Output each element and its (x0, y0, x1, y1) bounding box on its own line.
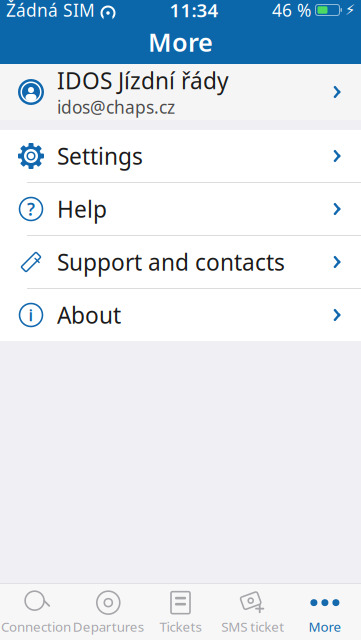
button[interactable]: Tickets (144, 588, 217, 636)
staticText: Departures (73, 618, 144, 635)
button[interactable]: Support and contacts (0, 236, 361, 288)
staticText: Tickets (159, 618, 201, 635)
staticText: Settings (57, 141, 143, 171)
staticText: Žádná SIM (6, 0, 95, 21)
staticText: Connection (1, 618, 71, 635)
button[interactable]: More (289, 588, 361, 636)
staticText: IDOS Jízdní řády (57, 65, 229, 95)
button[interactable]: SMS ticket (217, 588, 289, 636)
staticText: Help (57, 194, 107, 224)
staticText: 46 % (272, 0, 311, 21)
button[interactable]: ? (0, 183, 361, 235)
staticText: idos@chaps.cz (57, 95, 175, 118)
button[interactable]: Connection (0, 588, 72, 636)
staticText: SMS ticket (221, 618, 284, 635)
staticText: 11:34 (169, 0, 218, 22)
button[interactable]: IDOS Jízdní řády (0, 64, 361, 120)
staticText: ? (27, 197, 35, 220)
button[interactable]: Departures (72, 588, 144, 636)
button[interactable]: Settings (0, 130, 361, 182)
staticText: ⚡︎ (345, 2, 355, 18)
staticText: i (28, 304, 33, 326)
button[interactable]: i (0, 289, 361, 341)
staticText: More (148, 25, 213, 59)
staticText: Support and contacts (57, 247, 285, 277)
staticText: More (308, 618, 341, 635)
staticText: About (57, 300, 121, 330)
